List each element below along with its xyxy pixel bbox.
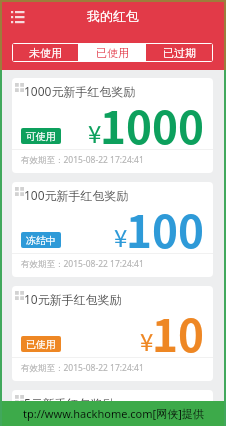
staticText: ¥ [140, 323, 154, 358]
button[interactable]: 1000元新手红包奖励 [12, 78, 213, 173]
staticText: 有效期至：2015-08-22 17:24:41 [21, 258, 144, 270]
staticText: 5 [178, 405, 204, 426]
staticText: 已使用 [96, 46, 129, 60]
staticText: 10 [152, 301, 204, 365]
button[interactable]: 100元新手红包奖励 [12, 182, 213, 277]
staticText: 我的红包 [87, 8, 139, 24]
staticText: 5元新手红包奖励 [24, 395, 115, 411]
staticText: 有效期至：2015-08-22 17:24:41 [21, 154, 144, 166]
staticText: 有效期至：2015-08-22 17:24:41 [21, 362, 144, 374]
staticText: 已使用 [26, 338, 56, 351]
staticText: 100 [126, 197, 204, 261]
staticText: 10元新手红包奖励 [24, 291, 122, 307]
button[interactable]: 未使用 [13, 44, 78, 61]
button[interactable]: 已使用 [79, 44, 145, 61]
button[interactable]: 10元新手红包奖励 [12, 286, 213, 381]
staticText: 100元新手红包奖励 [24, 187, 129, 203]
staticText: 未使用 [29, 46, 62, 60]
staticText: 冻结中 [26, 234, 56, 247]
button[interactable]: 已过期 [146, 44, 212, 61]
staticText: tp://www.hackhome.com[网侠]提供 [23, 406, 204, 421]
staticText: 1000 [100, 93, 204, 157]
staticText: 已过期 [163, 46, 196, 60]
staticText: 可使用 [26, 130, 56, 143]
button[interactable]: 5元新手红包奖励 [12, 390, 213, 426]
staticText: ¥ [88, 115, 102, 150]
staticText: 1000元新手红包奖励 [24, 83, 136, 99]
staticText: ¥ [114, 219, 128, 254]
button[interactable]: Menu [6, 5, 30, 29]
